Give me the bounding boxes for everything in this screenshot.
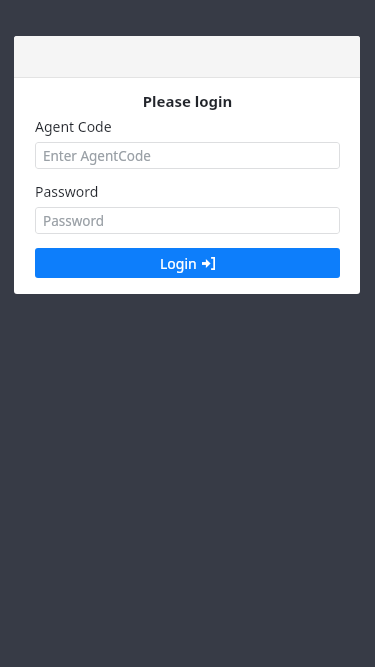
button[interactable]: Enter AgentCode [35, 142, 340, 169]
other: Login [202, 257, 215, 270]
staticText: Password [43, 212, 105, 230]
button[interactable]: Password [35, 207, 340, 234]
staticText: Please login [35, 91, 340, 111]
staticText: Password [35, 182, 99, 201]
button[interactable]: Login [35, 248, 340, 278]
staticText: Login [160, 254, 197, 273]
staticText: Agent Code [35, 117, 112, 136]
staticText: Enter AgentCode [43, 147, 151, 165]
